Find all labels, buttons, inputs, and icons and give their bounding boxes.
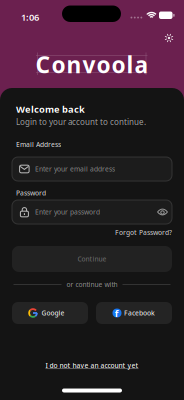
staticText: Convoola [35,49,148,79]
staticText: Facebook [124,309,155,317]
staticText: f [115,307,119,320]
button[interactable] [162,31,176,45]
staticText: Welcome back [16,103,85,115]
staticText: I do not have an account yet [45,361,138,370]
staticText: Google [41,309,64,317]
button[interactable]: f [96,302,172,324]
staticText: Login to your account to continue. [16,116,146,127]
staticText: Continue [77,255,106,263]
staticText: Password [16,188,46,197]
button[interactable]: Enter your password [12,200,172,224]
staticText: or continue with [66,280,117,289]
staticText: Email Address [16,140,61,149]
staticText: Forgot Password? [115,228,172,237]
staticText: Enter your email address [35,165,115,173]
button[interactable]: Continue [12,246,172,272]
staticText: 1:06 [21,11,39,23]
button[interactable]: Google [12,302,88,324]
staticText: Enter your password [35,208,100,216]
button[interactable]: Forgot Password? [115,228,172,237]
button[interactable]: Enter your email address [12,157,172,181]
button[interactable]: I do not have an account yet [45,361,138,370]
